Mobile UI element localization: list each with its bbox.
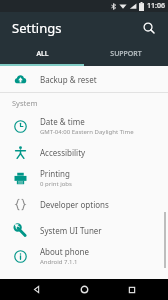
staticText: ALL	[36, 49, 49, 59]
button[interactable]: ALL	[0, 44, 84, 64]
button[interactable]: Home	[72, 279, 96, 300]
staticText: Date & time	[40, 116, 85, 127]
staticText: System UI Tuner	[40, 225, 102, 236]
button[interactable]: Recent apps	[120, 279, 144, 300]
button[interactable]: Back	[24, 279, 48, 300]
staticText: SUPPORT	[110, 49, 142, 59]
staticText: About phone	[40, 246, 89, 257]
button[interactable]: System UI Tuner	[0, 217, 168, 243]
staticText: 11:06	[147, 1, 165, 11]
staticText: 0 print jobs	[40, 180, 72, 188]
staticText: Android 7.1.1	[40, 258, 78, 266]
button[interactable]: Backup & reset	[0, 66, 168, 92]
button[interactable]: Date & time	[0, 113, 168, 139]
button[interactable]: Developer options	[0, 191, 168, 217]
staticText: System	[12, 98, 38, 108]
staticText: Printing	[40, 168, 70, 179]
staticText: Accessibility	[40, 147, 86, 158]
button[interactable]: Accessibility	[0, 139, 168, 165]
staticText: Settings	[12, 19, 62, 37]
staticText: Developer options	[40, 199, 109, 210]
button[interactable]: Printing	[0, 165, 168, 191]
staticText: GMT-04:00 Eastern Daylight Time	[40, 128, 134, 136]
button[interactable]: About phone	[0, 243, 168, 269]
staticText: Backup & reset	[40, 74, 97, 85]
button[interactable]: Search	[138, 17, 160, 39]
button[interactable]: SUPPORT	[84, 44, 168, 64]
